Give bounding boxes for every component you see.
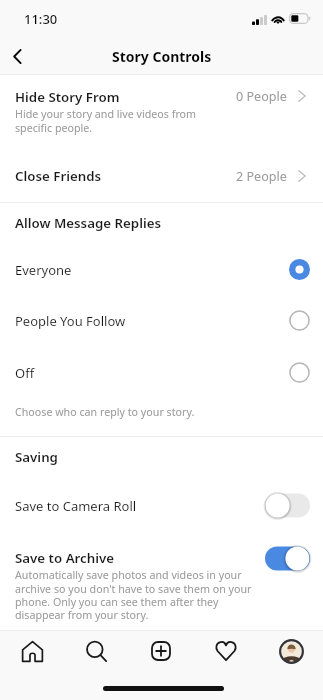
- staticText: 0 People: [236, 88, 287, 105]
- staticText: Hide Story From: [15, 88, 120, 106]
- button[interactable]: Everyone: [0, 245, 323, 293]
- button[interactable]: Profile: [274, 634, 308, 668]
- button[interactable]: Activity: [209, 634, 243, 668]
- button[interactable]: Close Friends: [0, 155, 323, 195]
- staticText: Story Controls: [112, 47, 212, 66]
- staticText: Hide your story and live videos from spe…: [15, 107, 225, 135]
- staticText: People You Follow: [15, 312, 126, 330]
- staticText: Save to Archive: [15, 549, 115, 567]
- staticText: Save to Camera Roll: [15, 497, 137, 515]
- staticText: Everyone: [15, 261, 72, 279]
- staticText: Allow Message Replies: [15, 214, 161, 232]
- button[interactable]: Back: [0, 39, 34, 73]
- button[interactable]: People You Follow: [0, 296, 323, 344]
- staticText: Close Friends: [15, 167, 102, 185]
- staticText: Saving: [15, 448, 58, 466]
- button[interactable]: Off: [0, 348, 323, 396]
- button[interactable]: Search: [79, 634, 113, 668]
- button[interactable]: Save to Camera Roll: [0, 481, 323, 529]
- staticText: Off: [15, 364, 35, 382]
- button[interactable]: Hide Story From: [0, 80, 323, 138]
- button[interactable]: Save to Archive: [0, 541, 323, 627]
- button[interactable]: Home: [15, 634, 49, 668]
- staticText: 11:30: [24, 10, 58, 28]
- staticText: Choose who can reply to your story.: [15, 405, 195, 420]
- staticText: Automatically save photos and videos in …: [15, 568, 254, 622]
- staticText: 2 People: [236, 168, 287, 185]
- button[interactable]: Create: [144, 634, 178, 668]
